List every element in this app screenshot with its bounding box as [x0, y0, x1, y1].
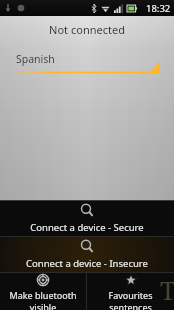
staticText: Connect a device - Secure [30, 221, 144, 234]
staticText: 18:32 [146, 2, 171, 15]
other: Make bluetooth visible [36, 273, 50, 287]
button[interactable]: Search [0, 237, 174, 272]
button[interactable]: T [87, 273, 174, 310]
button[interactable]: Make bluetooth visible [0, 273, 86, 310]
staticText: Connect a device - Insecure [26, 257, 148, 270]
button[interactable]: Spanish [14, 51, 160, 75]
other: Search [80, 203, 95, 218]
staticText: T [160, 273, 174, 307]
staticText: Make bluetooth visible [0, 289, 86, 310]
button[interactable]: Search [0, 201, 174, 236]
staticText: Favourites sentences [87, 289, 174, 310]
staticText: Not connected [0, 22, 174, 37]
staticText: Spanish [16, 52, 55, 66]
other: Favourites sentences [124, 273, 138, 287]
other: Search [80, 239, 95, 254]
